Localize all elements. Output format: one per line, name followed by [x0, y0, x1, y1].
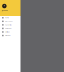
button[interactable]: Favorites — [0, 23, 20, 27]
staticText: Jane Doe — [2, 10, 8, 11]
button[interactable]: Calendar — [0, 27, 20, 30]
staticText: Messages — [5, 20, 13, 22]
button[interactable]: Sign Out — [0, 34, 20, 37]
button[interactable]: Settings — [0, 30, 20, 34]
button[interactable]: Profile photo — [2, 4, 7, 8]
staticText: Favorites — [5, 24, 12, 26]
staticText: Settings — [5, 31, 10, 33]
staticText: Sign Out — [5, 35, 10, 36]
staticText: Calendar — [5, 27, 12, 29]
button[interactable]: Home — [0, 16, 20, 19]
staticText: Home — [5, 17, 9, 19]
button[interactable]: Messages — [0, 19, 20, 23]
